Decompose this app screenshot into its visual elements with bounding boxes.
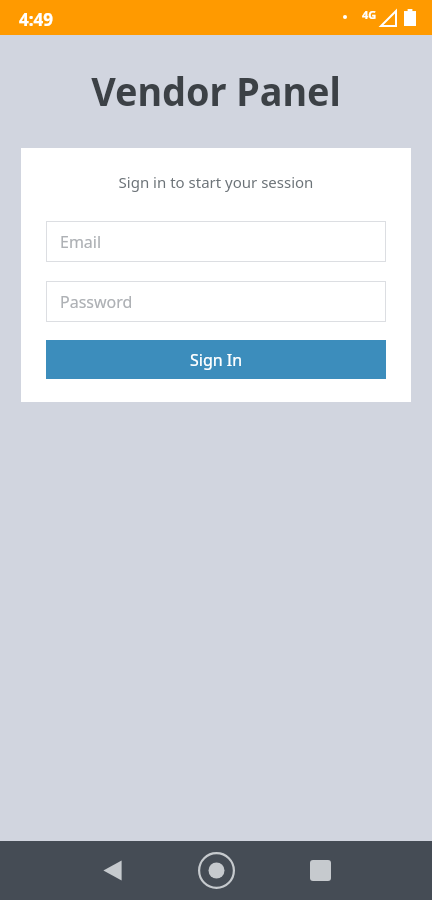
staticText: Sign in to start your session <box>21 172 411 192</box>
staticText: 4:49 <box>19 8 53 31</box>
button[interactable]: Home <box>192 846 240 894</box>
staticText: Password <box>60 291 133 313</box>
staticText: 4G <box>362 7 377 22</box>
staticText: Vendor Panel <box>12 63 420 117</box>
button[interactable]: Sign In <box>46 340 386 379</box>
button[interactable]: Password <box>46 281 386 322</box>
button[interactable]: Recent apps <box>296 846 344 894</box>
staticText: Sign In <box>190 349 243 371</box>
staticText: Email <box>60 231 102 253</box>
button[interactable]: Email <box>46 221 386 262</box>
button[interactable]: Back <box>88 846 136 894</box>
